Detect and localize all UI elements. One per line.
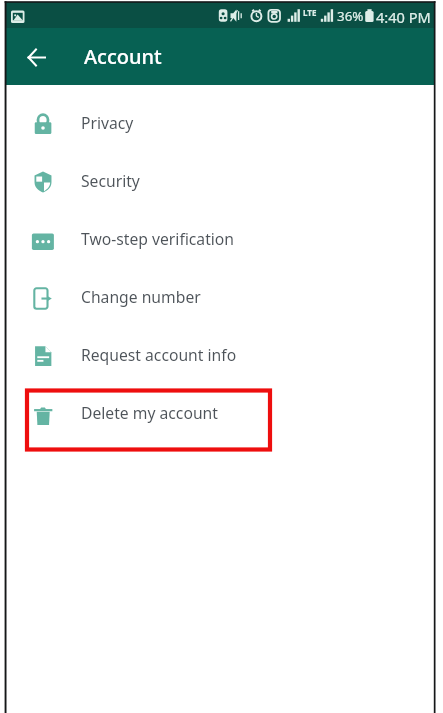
staticText: Two-step verification [81, 228, 235, 249]
button[interactable]: Security [0, 151, 443, 209]
staticText: Security [81, 170, 140, 191]
staticText: Request account info [81, 344, 237, 365]
button[interactable]: Request account info [0, 325, 443, 383]
button[interactable]: Delete my account [0, 383, 443, 441]
staticText: 4:40 PM [376, 7, 431, 27]
staticText: Delete my account [81, 402, 218, 423]
staticText: Account [84, 43, 162, 70]
staticText: LTE [303, 7, 317, 18]
staticText: Change number [81, 286, 201, 307]
button[interactable]: Change number [0, 267, 443, 325]
button[interactable]: Privacy [0, 93, 443, 151]
button[interactable]: Back [20, 41, 52, 73]
staticText: Privacy [81, 112, 134, 133]
button[interactable]: Two-step verification [0, 209, 443, 267]
staticText: 36% [337, 7, 364, 25]
